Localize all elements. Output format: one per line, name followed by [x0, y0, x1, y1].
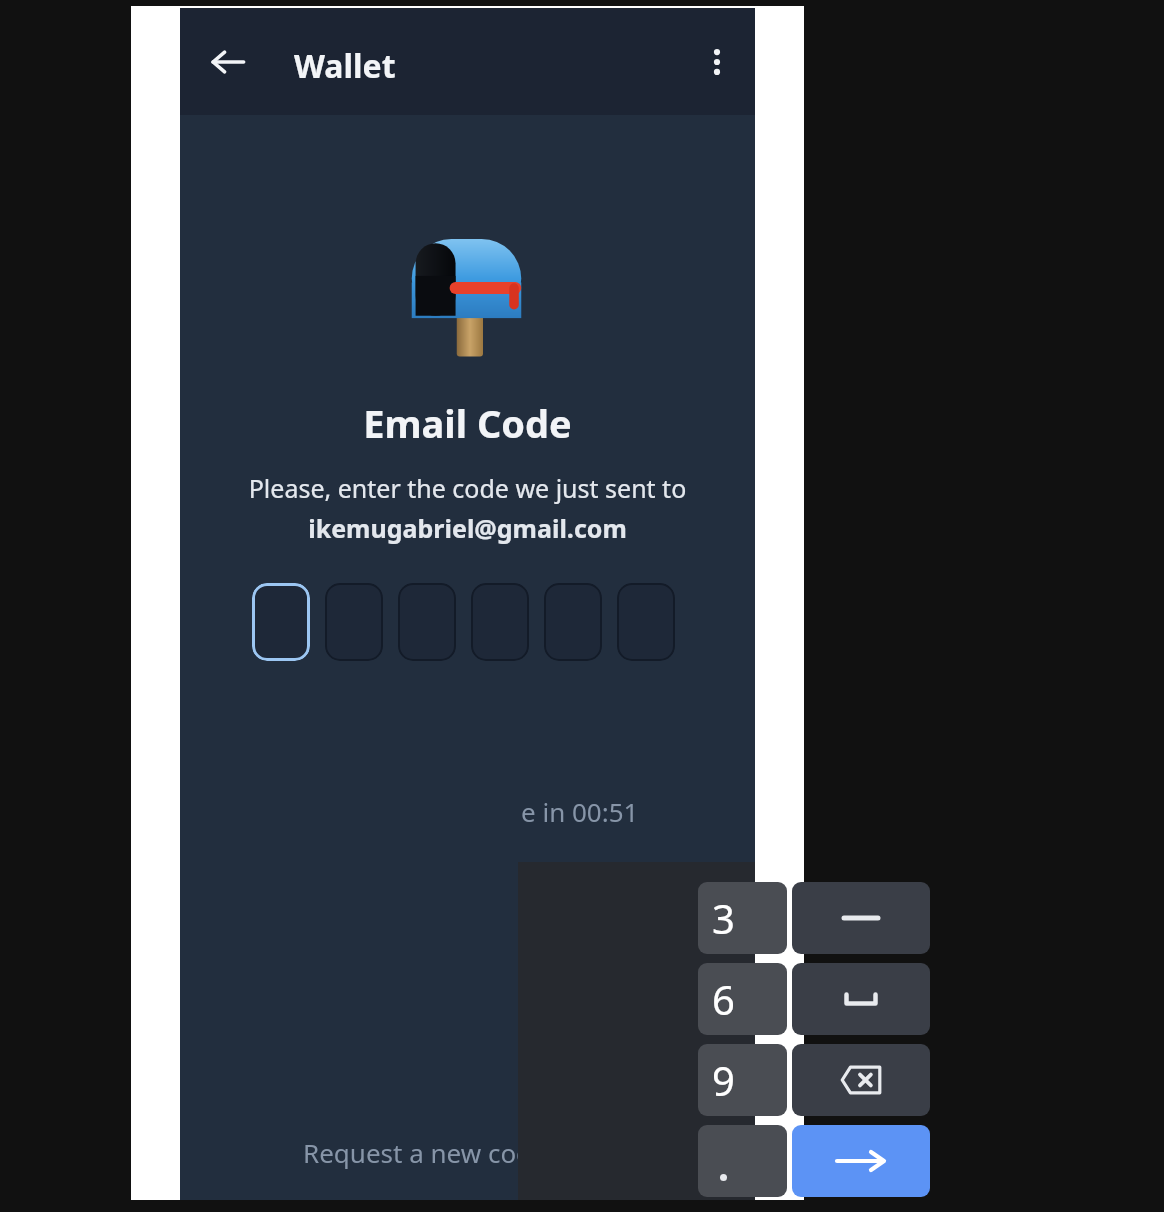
- button[interactable]: More options: [683, 28, 751, 96]
- staticText: 6: [712, 972, 735, 1026]
- staticText: Email Code: [180, 397, 755, 449]
- button[interactable]: [544, 583, 602, 661]
- button[interactable]: 9: [698, 1044, 787, 1116]
- button[interactable]: Back: [194, 28, 262, 96]
- button[interactable]: Minus: [792, 882, 930, 954]
- staticText: ikemugabriel@gmail.com: [180, 511, 755, 545]
- button[interactable]: [252, 583, 310, 661]
- button[interactable]: Enter: [792, 1125, 930, 1197]
- staticText: 9: [712, 1053, 735, 1107]
- button[interactable]: 3: [698, 882, 787, 954]
- staticText: Wallet: [294, 44, 396, 88]
- button[interactable]: [617, 583, 675, 661]
- button[interactable]: Request a new code: [303, 1126, 547, 1178]
- button[interactable]: [698, 1125, 787, 1197]
- button[interactable]: [325, 583, 383, 661]
- button[interactable]: [398, 583, 456, 661]
- button[interactable]: Space: [792, 963, 930, 1035]
- staticText: Request a new code: [303, 1135, 547, 1170]
- button[interactable]: [471, 583, 529, 661]
- button[interactable]: Backspace: [792, 1044, 930, 1116]
- button[interactable]: 6: [698, 963, 787, 1035]
- staticText: e in 00:51: [521, 794, 639, 829]
- staticText: Please, enter the code we just sent to: [180, 471, 755, 505]
- staticText: 3: [712, 891, 735, 945]
